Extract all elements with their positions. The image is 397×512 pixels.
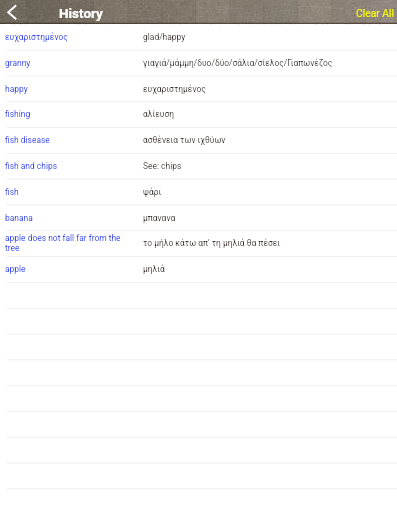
staticText: Clear All bbox=[356, 7, 395, 19]
staticText: γιαγιά/μάμμη/δυο/δύο/σάλια/σίελος/Γιαπων… bbox=[143, 58, 333, 68]
staticText: fishing bbox=[5, 109, 130, 119]
staticText: ευχαριστημένος bbox=[5, 32, 130, 42]
button[interactable]: fishing bbox=[0, 101, 397, 127]
staticText: banana bbox=[5, 213, 130, 223]
button[interactable]: apple bbox=[0, 256, 397, 282]
button[interactable]: ευχαριστημένος bbox=[0, 24, 397, 50]
staticText: ψάρι bbox=[143, 187, 162, 197]
staticText: το μήλο κάτω απ' τη μηλιά θα πέσει bbox=[143, 238, 281, 248]
staticText: apple bbox=[5, 264, 130, 274]
staticText: See: chips bbox=[143, 161, 182, 171]
staticText: apple does not fall far from the tree bbox=[5, 233, 130, 253]
staticText: History bbox=[59, 5, 103, 21]
staticText: μηλιά bbox=[143, 264, 165, 274]
staticText: ευχαριστημένος bbox=[143, 84, 206, 94]
staticText: μπανανα bbox=[143, 213, 176, 223]
button[interactable]: apple does not fall far from the tree bbox=[0, 230, 397, 256]
staticText: happy bbox=[5, 84, 130, 94]
button[interactable]: fish bbox=[0, 179, 397, 205]
staticText: fish and chips bbox=[5, 161, 130, 171]
button[interactable]: granny bbox=[0, 50, 397, 76]
staticText: fish bbox=[5, 187, 130, 197]
button[interactable]: fish and chips bbox=[0, 153, 397, 179]
button[interactable]: Back bbox=[0, 0, 40, 24]
button[interactable]: fish disease bbox=[0, 127, 397, 153]
button[interactable]: Clear All bbox=[356, 5, 397, 19]
button[interactable]: banana bbox=[0, 205, 397, 231]
staticText: αλίευση bbox=[143, 109, 174, 119]
staticText: ασθένεια των ιχθύων bbox=[143, 135, 226, 145]
button[interactable]: happy bbox=[0, 76, 397, 102]
staticText: fish disease bbox=[5, 135, 130, 145]
staticText: granny bbox=[5, 58, 130, 68]
staticText: glad/happy bbox=[143, 32, 186, 42]
